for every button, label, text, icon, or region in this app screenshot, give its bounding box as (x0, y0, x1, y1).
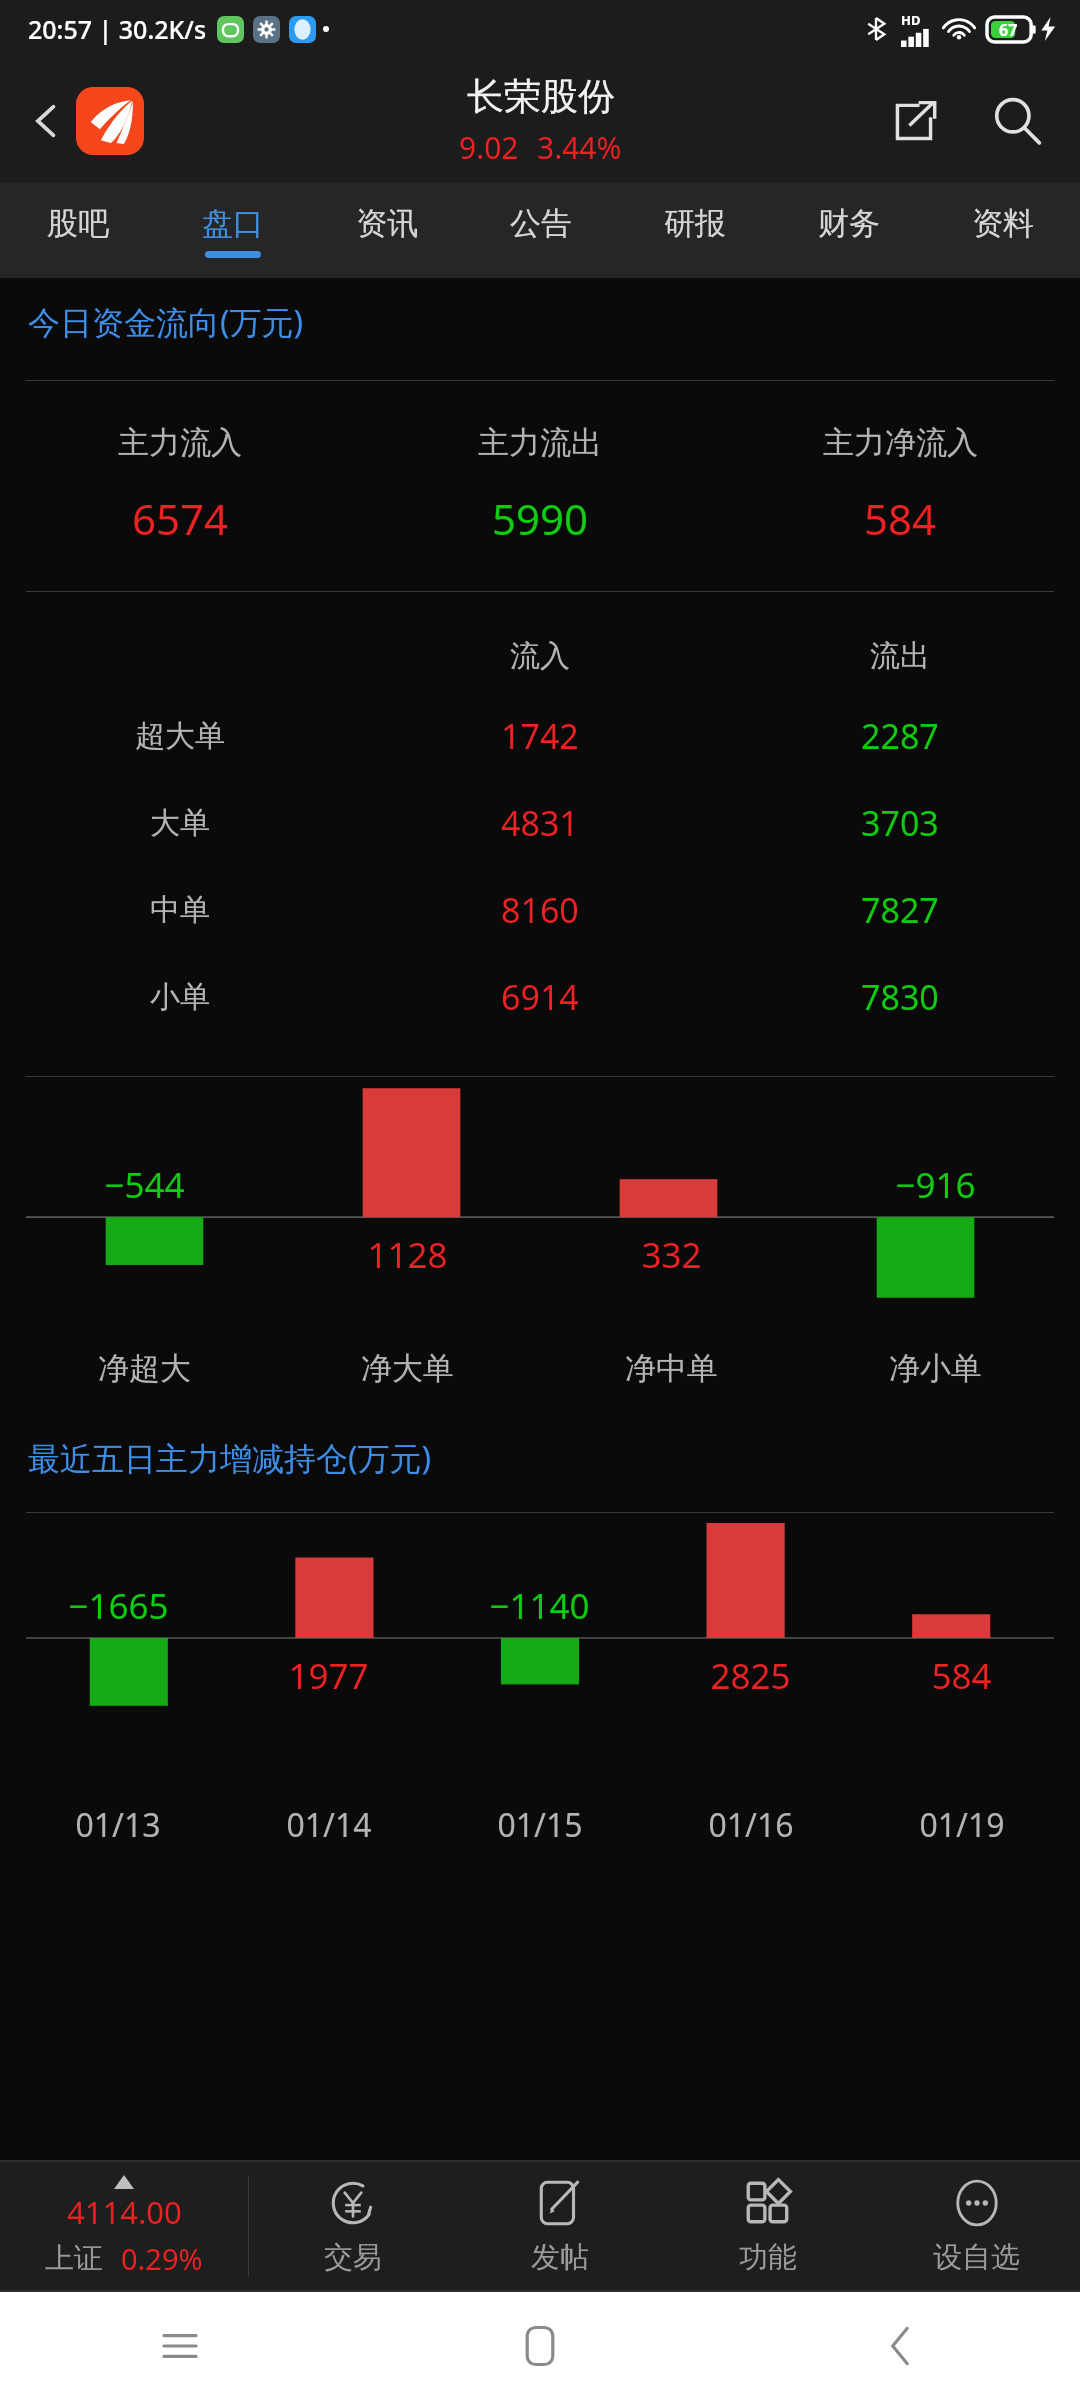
staticText: 8160 (501, 887, 579, 933)
staticText: 6574 (132, 490, 229, 547)
button[interactable]: Share (876, 83, 952, 159)
staticText: 长荣股份 (467, 73, 615, 120)
staticText: 4114.00 (67, 2191, 182, 2233)
staticText: 主力流入 (118, 423, 242, 462)
staticText: 股吧 (47, 204, 109, 243)
staticText: 资料 (972, 204, 1034, 243)
button[interactable]: 主力流出 (360, 423, 720, 547)
staticText: −1665 (68, 1582, 169, 1630)
button[interactable]: 资讯 (310, 183, 464, 278)
staticText: 交易 (324, 2239, 382, 2276)
button[interactable]: Back (720, 2292, 1080, 2400)
button[interactable]: 4114.00 (0, 2162, 248, 2290)
staticText: 01/14 (286, 1803, 372, 1847)
staticText: 1742 (501, 713, 579, 759)
button[interactable]: 公告 (464, 183, 618, 278)
staticText: 4831 (501, 800, 579, 846)
staticText: 超大单 (135, 717, 225, 755)
staticText: 332 (641, 1231, 702, 1279)
staticText: 5990 (492, 490, 589, 547)
staticText: 7827 (861, 887, 939, 933)
staticText: 流入 (510, 637, 570, 675)
staticText: 中单 (150, 891, 210, 929)
staticText: 0.29% (121, 2239, 203, 2278)
staticText: 67 (999, 19, 1018, 41)
staticText: 净小单 (889, 1349, 982, 1388)
button[interactable]: Search (976, 80, 1058, 162)
staticText: 发帖 (531, 2239, 589, 2276)
staticText: −916 (895, 1161, 976, 1209)
staticText: 净中单 (625, 1349, 718, 1388)
staticText: 9.02 (459, 127, 519, 168)
button[interactable]: 功能 (664, 2162, 872, 2290)
staticText: 01/15 (497, 1803, 583, 1847)
staticText: 最近五日主力增减持仓(万元) (28, 1436, 432, 1480)
button[interactable]: 小单 (0, 953, 1080, 1040)
button[interactable]: 主力净流入 (720, 423, 1080, 547)
staticText: 小单 (150, 978, 210, 1016)
staticText: 净超大 (98, 1349, 191, 1388)
staticText: 主力流出 (478, 423, 602, 462)
button[interactable]: 超大单 (0, 692, 1080, 779)
button[interactable]: 盘口 (155, 183, 310, 278)
button[interactable]: 主力流入 (0, 423, 360, 547)
staticText: −1140 (489, 1582, 590, 1630)
button[interactable]: 财务 (772, 183, 926, 278)
staticText: HD (901, 11, 921, 29)
staticText: 资讯 (356, 204, 418, 243)
staticText: 6914 (501, 974, 579, 1020)
staticText: 流出 (870, 637, 930, 675)
staticText: 01/19 (919, 1803, 1005, 1847)
button[interactable]: Home (360, 2292, 720, 2400)
button[interactable]: 发帖 (456, 2162, 664, 2290)
staticText: 1977 (288, 1652, 369, 1700)
button[interactable]: 交易 (249, 2162, 456, 2290)
staticText: 2825 (710, 1652, 791, 1700)
button[interactable]: 大单 (0, 779, 1080, 866)
button[interactable]: 股吧 (0, 183, 155, 278)
staticText: 20:57 | 30.2K/s (28, 12, 207, 46)
staticText: 公告 (510, 204, 572, 243)
staticText: 上证 (45, 2240, 103, 2277)
button[interactable]: 中单 (0, 866, 1080, 953)
staticText: 584 (931, 1652, 992, 1700)
button[interactable]: Back (10, 85, 82, 157)
button[interactable]: Recent apps (0, 2292, 360, 2400)
staticText: 研报 (664, 204, 726, 243)
button[interactable]: 研报 (618, 183, 772, 278)
staticText: 7830 (861, 974, 939, 1020)
staticText: 1128 (367, 1231, 448, 1279)
staticText: 财务 (818, 204, 880, 243)
staticText: 主力净流入 (823, 423, 978, 462)
staticText: 584 (864, 490, 937, 547)
button[interactable]: 资料 (926, 183, 1080, 278)
staticText: 今日资金流向(万元) (28, 300, 304, 344)
staticText: −544 (104, 1161, 185, 1209)
staticText: 01/13 (75, 1803, 161, 1847)
staticText: 大单 (150, 804, 210, 842)
button[interactable]: 设自选 (872, 2162, 1080, 2290)
staticText: 01/16 (708, 1803, 794, 1847)
staticText: 3703 (861, 800, 939, 846)
staticText: 设自选 (933, 2239, 1020, 2276)
staticText: 3.44% (537, 127, 622, 168)
staticText: 盘口 (202, 204, 264, 243)
button[interactable]: App logo (76, 87, 144, 155)
staticText: 2287 (861, 713, 939, 759)
staticText: 净大单 (361, 1349, 454, 1388)
staticText: 功能 (739, 2239, 797, 2276)
